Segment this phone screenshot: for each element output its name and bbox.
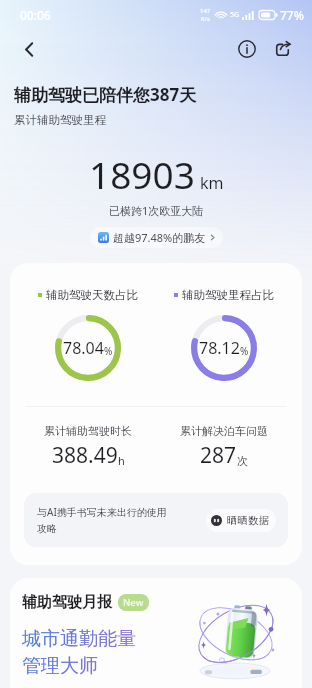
staticText: h xyxy=(118,453,125,468)
staticText: 287 xyxy=(200,441,237,470)
staticText: 388.49 xyxy=(52,441,118,470)
staticText: 辅助驾驶月报 xyxy=(22,593,112,612)
button[interactable]: Info xyxy=(232,34,262,64)
staticText: New xyxy=(123,596,144,609)
staticText: 辅助驾驶里程占比 xyxy=(182,288,274,302)
staticText: 累计辅助驾驶里程 xyxy=(14,113,106,127)
staticText: 次 xyxy=(237,454,248,468)
staticText: % xyxy=(104,344,113,358)
staticText: 77% xyxy=(280,7,304,23)
staticText: km xyxy=(200,172,224,194)
staticText: 超越97.48%的鹏友 xyxy=(113,230,206,245)
staticText: 已横跨1次欧亚大陆 xyxy=(109,203,204,218)
staticText: 78.04 xyxy=(63,337,104,359)
staticText: 18903 xyxy=(89,149,195,199)
button[interactable]: 超越97.48%的鹏友 xyxy=(90,227,223,248)
staticText: % xyxy=(240,344,249,358)
staticText: 晒晒数据 xyxy=(227,514,269,527)
staticText: 78.12 xyxy=(199,337,240,359)
staticText: 城市通勤能量 管理大师 xyxy=(22,627,136,678)
staticText: 辅助驾驶天数占比 xyxy=(46,288,138,302)
staticText: 与AI携手书写未来出行的使用攻略 xyxy=(37,505,170,535)
staticText: 辅助驾驶已陪伴您387天 xyxy=(14,83,197,106)
staticText: 5G xyxy=(230,10,240,20)
staticText: 累计辅助驾驶时长 xyxy=(44,424,132,438)
button[interactable]: 与AI携手书写未来出行的使用攻略 xyxy=(24,493,288,547)
staticText: 累计解决泊车问题 xyxy=(180,424,268,438)
staticText: 00:06 xyxy=(20,7,51,23)
staticText: K/s xyxy=(201,15,210,23)
button[interactable]: 辅助驾驶月报 xyxy=(10,578,302,688)
staticText: 147 xyxy=(200,7,211,15)
button[interactable]: Back xyxy=(11,31,47,67)
button[interactable]: 晒晒数据 xyxy=(206,509,276,532)
button[interactable]: Share xyxy=(267,34,297,64)
